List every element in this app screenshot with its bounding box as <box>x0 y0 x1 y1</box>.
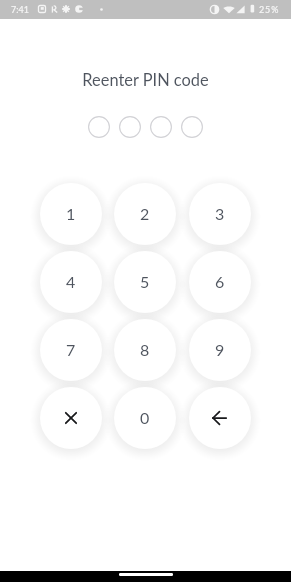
staticText: Reenter PIN code <box>82 70 209 90</box>
staticText: 1 <box>66 204 76 223</box>
button[interactable]: Backspace <box>189 387 251 449</box>
button[interactable]: 4 <box>40 251 102 313</box>
button[interactable]: 9 <box>189 319 251 381</box>
button[interactable]: 2 <box>114 183 176 245</box>
button[interactable]: Clear <box>40 387 102 449</box>
button[interactable]: 5 <box>114 251 176 313</box>
button[interactable]: 6 <box>189 251 251 313</box>
staticText: 8 <box>140 340 150 359</box>
staticText: 5 <box>140 272 150 291</box>
staticText: 7 <box>66 340 76 359</box>
button[interactable]: 3 <box>189 183 251 245</box>
button[interactable]: 7 <box>40 319 102 381</box>
button[interactable]: Home <box>119 573 173 576</box>
button[interactable]: 8 <box>114 319 176 381</box>
staticText: 4 <box>66 272 76 291</box>
staticText: 6 <box>215 272 225 291</box>
staticText: 3 <box>215 204 225 223</box>
staticText: 25% <box>259 4 280 15</box>
staticText: 7:41 <box>11 4 29 15</box>
staticText: 0 <box>140 408 150 427</box>
button[interactable]: 0 <box>114 387 176 449</box>
staticText: 9 <box>215 340 225 359</box>
staticText: 2 <box>140 204 150 223</box>
button[interactable]: 1 <box>40 183 102 245</box>
